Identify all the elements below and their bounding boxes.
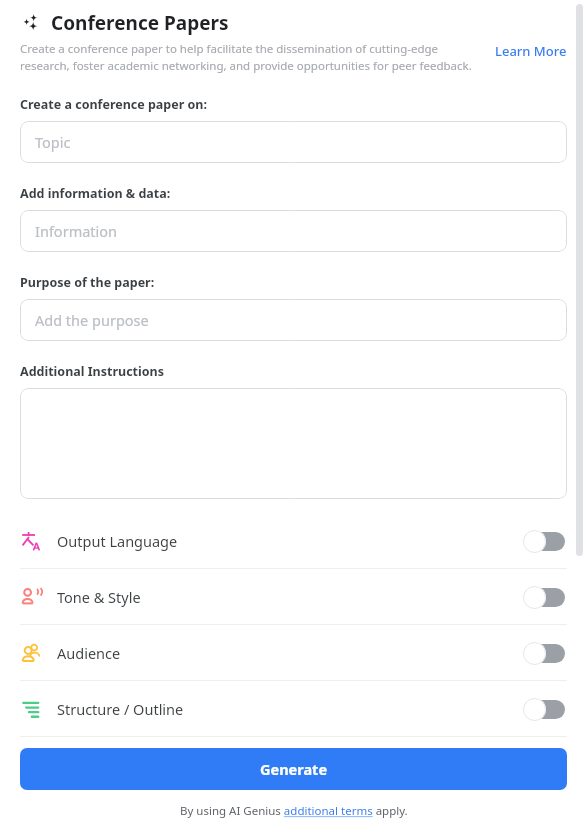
staticText: Tone & Style bbox=[57, 587, 523, 607]
staticText: Structure / Outline bbox=[57, 699, 523, 719]
staticText: Information bbox=[35, 221, 118, 241]
staticText: Topic bbox=[35, 132, 71, 152]
button[interactable]: Learn More bbox=[487, 41, 567, 60]
button[interactable]: Topic bbox=[20, 121, 567, 163]
button[interactable]: Toggle bbox=[523, 641, 567, 665]
button[interactable]: Structure / Outline bbox=[20, 681, 567, 736]
staticText: Output Language bbox=[57, 531, 523, 551]
staticText: Generate bbox=[260, 759, 328, 779]
staticText: Audience bbox=[57, 643, 523, 663]
staticText: Learn More bbox=[495, 42, 567, 60]
button[interactable]: Toggle bbox=[523, 585, 567, 609]
staticText: Add the purpose bbox=[35, 310, 149, 330]
button[interactable]: Tone & Style bbox=[20, 569, 567, 624]
staticText: Add information & data: bbox=[20, 185, 171, 202]
staticText: Conference Papers bbox=[51, 10, 229, 36]
button[interactable]: Generate bbox=[20, 748, 567, 790]
staticText: Additional Instructions bbox=[20, 363, 164, 380]
staticText: Create a conference paper on: bbox=[20, 96, 208, 113]
staticText: Create a conference paper to help facili… bbox=[20, 41, 487, 73]
button[interactable]: Toggle bbox=[523, 529, 567, 553]
button[interactable] bbox=[20, 388, 567, 499]
staticText: By using AI Genius additional terms appl… bbox=[180, 803, 408, 819]
button[interactable]: Audience bbox=[20, 625, 567, 680]
button[interactable]: Toggle bbox=[523, 697, 567, 721]
button[interactable]: Output Language bbox=[20, 513, 567, 568]
button[interactable]: Information bbox=[20, 210, 567, 252]
button[interactable]: Add the purpose bbox=[20, 299, 567, 341]
staticText: Purpose of the paper: bbox=[20, 274, 155, 291]
